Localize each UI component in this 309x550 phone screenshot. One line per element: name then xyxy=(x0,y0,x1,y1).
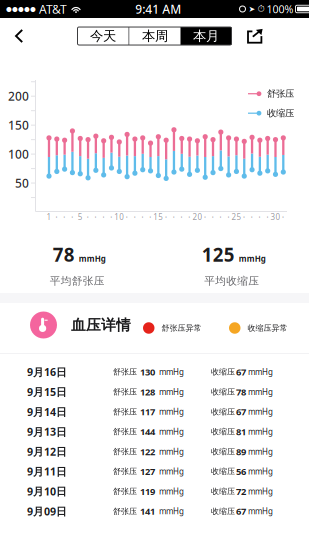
staticText: · xyxy=(219,211,222,223)
staticText: 舒张压 xyxy=(267,88,294,99)
staticText: 舒张压 xyxy=(113,466,137,476)
staticText: mmHg xyxy=(159,486,184,497)
staticText: mmHg xyxy=(248,426,273,437)
staticText: mmHg xyxy=(248,466,273,477)
staticText: 141 xyxy=(140,505,155,517)
staticText: 20 xyxy=(192,212,202,222)
button[interactable]: 9月11日 xyxy=(0,461,309,481)
staticText: 100% xyxy=(266,2,293,16)
staticText: AT&T xyxy=(36,1,67,17)
staticText: 收缩压 xyxy=(211,506,235,516)
staticText: · xyxy=(63,211,66,223)
staticText: mmHg xyxy=(159,386,184,397)
staticText: 30 xyxy=(270,212,280,222)
staticText: 150 xyxy=(8,117,29,133)
staticText: 舒张压 xyxy=(113,506,137,516)
staticText: ➤ xyxy=(248,4,255,14)
staticText: 血压详情 xyxy=(71,316,131,334)
staticText: 128 xyxy=(140,386,155,398)
button[interactable]: 9月10日 xyxy=(0,481,309,501)
button[interactable]: 今天 xyxy=(77,27,128,45)
staticText: 9月09日 xyxy=(27,504,67,518)
staticText: · xyxy=(266,211,269,223)
staticText: 平均收缩压 xyxy=(204,274,259,287)
staticText: ⏱ xyxy=(257,4,264,13)
staticText: · xyxy=(126,211,129,223)
staticText: 10 xyxy=(114,212,124,222)
button[interactable]: 9月12日 xyxy=(0,442,309,461)
staticText: 130 xyxy=(140,366,155,378)
staticText: 收缩压异常 xyxy=(247,323,287,333)
staticText: · xyxy=(243,211,246,223)
staticText: 122 xyxy=(140,445,155,458)
staticText: mmHg xyxy=(159,367,184,377)
staticText: 127 xyxy=(140,465,155,478)
button[interactable]: 9月09日 xyxy=(0,501,309,521)
staticText: · xyxy=(227,211,230,223)
staticText: 100 xyxy=(8,146,29,162)
staticText: 67 xyxy=(236,406,246,418)
button[interactable]: 本周 xyxy=(129,27,180,45)
staticText: 舒张压 xyxy=(113,447,137,456)
staticText: mmHg xyxy=(159,406,184,417)
staticText: mmHg xyxy=(79,253,106,264)
button[interactable]: 9月13日 xyxy=(0,422,309,442)
staticText: · xyxy=(94,211,97,223)
button[interactable]: 分享 xyxy=(236,18,274,54)
staticText: mmHg xyxy=(248,446,273,457)
button[interactable]: 9月15日 xyxy=(0,382,309,402)
staticText: · xyxy=(282,211,285,223)
staticText: · xyxy=(172,211,175,223)
staticText: 舒张压 xyxy=(113,486,137,496)
staticText: 78 xyxy=(53,242,75,267)
staticText: 9月11日 xyxy=(27,464,67,479)
staticText: 15 xyxy=(153,212,163,222)
staticText: 50 xyxy=(15,175,29,191)
staticText: · xyxy=(180,211,183,223)
staticText: 今天 xyxy=(90,28,116,44)
staticText: · xyxy=(165,211,168,223)
staticText: 5 xyxy=(78,212,83,222)
staticText: · xyxy=(102,211,105,223)
button[interactable]: 9月16日 xyxy=(0,362,309,382)
staticText: 舒张压 xyxy=(113,387,137,397)
staticText: 收缩压 xyxy=(211,367,235,377)
staticText: ●●●●● xyxy=(6,5,36,13)
staticText: 舒张压 xyxy=(113,367,137,377)
staticText: · xyxy=(86,211,89,223)
staticText: · xyxy=(258,211,261,223)
staticText: · xyxy=(251,211,254,223)
staticText: · xyxy=(133,211,136,223)
button[interactable]: 返回 xyxy=(0,18,38,54)
staticText: 收缩压 xyxy=(211,387,235,397)
staticText: 117 xyxy=(140,406,155,418)
button[interactable]: 9月14日 xyxy=(0,402,309,422)
staticText: mmHg xyxy=(248,486,273,497)
staticText: 119 xyxy=(140,485,155,498)
staticText: 舒张压 xyxy=(113,407,137,417)
staticText: 78 xyxy=(236,386,246,398)
staticText: 56 xyxy=(236,465,246,478)
staticText: · xyxy=(204,211,207,223)
staticText: 收缩压 xyxy=(211,466,235,476)
staticText: mmHg xyxy=(239,253,266,264)
button[interactable]: 本月 xyxy=(180,27,231,45)
staticText: 9:41 AM xyxy=(135,1,181,17)
staticText: 收缩压 xyxy=(211,427,235,436)
staticText: · xyxy=(110,211,113,223)
staticText: 9月12日 xyxy=(27,444,67,459)
staticText: mmHg xyxy=(159,466,184,477)
staticText: mmHg xyxy=(248,386,273,397)
staticText: 125 xyxy=(202,242,235,267)
staticText: 81 xyxy=(236,425,246,438)
staticText: 舒张压异常 xyxy=(161,323,201,333)
staticText: 收缩压 xyxy=(267,107,294,119)
staticText: · xyxy=(211,211,214,223)
staticText: 25 xyxy=(231,212,241,222)
staticText: mmHg xyxy=(159,446,184,457)
staticText: 89 xyxy=(236,445,246,458)
staticText: 1 xyxy=(46,212,51,222)
staticText: mmHg xyxy=(248,506,273,516)
staticText: 收缩压 xyxy=(211,486,235,496)
staticText: · xyxy=(149,211,152,223)
